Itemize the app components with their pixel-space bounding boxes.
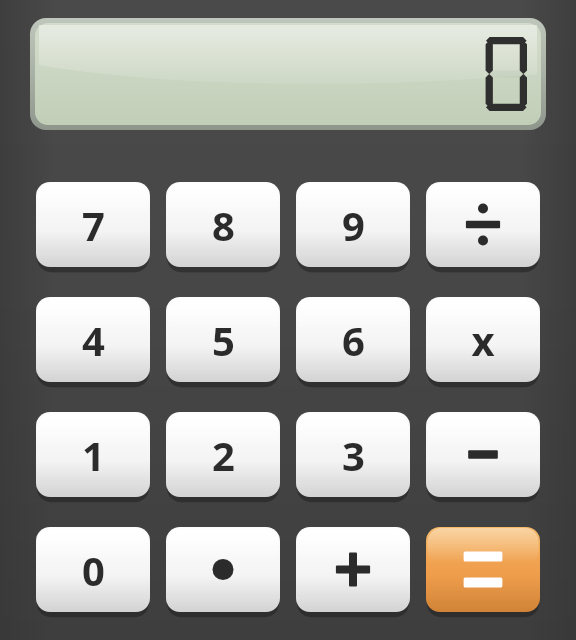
button[interactable]: Divide — [426, 182, 540, 270]
button[interactable]: 5 — [166, 297, 280, 385]
staticText: 9 — [342, 198, 365, 252]
button[interactable]: 0 — [36, 527, 150, 615]
button[interactable]: Equals — [426, 527, 540, 615]
staticText: 1 — [82, 428, 105, 482]
staticText: 3 — [342, 428, 365, 482]
button[interactable]: 4 — [36, 297, 150, 385]
staticText: 8 — [212, 198, 235, 252]
button[interactable]: Plus — [296, 527, 410, 615]
button[interactable]: x — [426, 297, 540, 385]
button[interactable]: 6 — [296, 297, 410, 385]
staticText: 5 — [212, 313, 235, 367]
button[interactable]: 2 — [166, 412, 280, 500]
button[interactable]: 7 — [36, 182, 150, 270]
button[interactable]: 9 — [296, 182, 410, 270]
staticText: 4 — [82, 313, 105, 367]
button[interactable]: Decimal point — [166, 527, 280, 615]
button[interactable]: 8 — [166, 182, 280, 270]
button[interactable]: 1 — [36, 412, 150, 500]
button[interactable]: 3 — [296, 412, 410, 500]
staticText: 2 — [212, 428, 235, 482]
staticText: 7 — [82, 198, 105, 252]
button[interactable]: Minus — [426, 412, 540, 500]
staticText: 0 — [82, 543, 105, 597]
staticText: 6 — [342, 313, 365, 367]
staticText: x — [471, 313, 495, 367]
